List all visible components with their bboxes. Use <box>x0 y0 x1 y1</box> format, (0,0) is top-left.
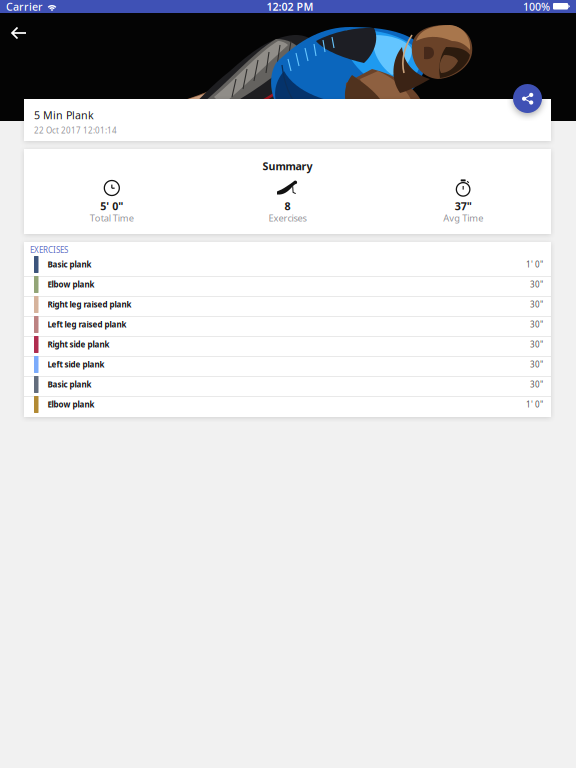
staticText: Elbow plank <box>47 279 94 290</box>
staticText: 30" <box>530 299 543 310</box>
button[interactable]: Back <box>2 17 38 49</box>
staticText: Basic plank <box>47 259 91 270</box>
button[interactable]: Right leg raised plank <box>24 297 551 317</box>
staticText: 5 Min Plank <box>34 108 94 122</box>
staticText: 30" <box>530 339 543 350</box>
staticText: Avg Time <box>443 212 483 224</box>
staticText: Elbow plank <box>47 399 94 410</box>
button[interactable]: Basic plank <box>24 377 551 397</box>
staticText: 30" <box>530 379 543 390</box>
staticText: Right leg raised plank <box>47 299 131 310</box>
staticText: 30" <box>530 279 543 290</box>
button[interactable]: Elbow plank <box>24 397 551 417</box>
staticText: 37" <box>455 199 472 213</box>
staticText: EXERCISES <box>30 245 68 255</box>
button[interactable]: Left leg raised plank <box>24 317 551 337</box>
staticText: Left leg raised plank <box>47 319 126 330</box>
staticText: Summary <box>262 159 312 173</box>
staticText: 5' 0" <box>100 199 123 213</box>
button[interactable]: Left side plank <box>24 357 551 377</box>
button[interactable]: Elbow plank <box>24 277 551 297</box>
staticText: Exercises <box>268 212 306 224</box>
staticText: 8 <box>284 199 290 213</box>
staticText: Left side plank <box>47 359 104 370</box>
button[interactable]: Share <box>513 84 542 113</box>
staticText: 1' 0" <box>526 399 543 410</box>
button[interactable]: Right side plank <box>24 337 551 357</box>
staticText: 30" <box>530 359 543 370</box>
staticText: 30" <box>530 319 543 330</box>
staticText: Right side plank <box>47 339 109 350</box>
staticText: 100% <box>523 0 550 14</box>
button[interactable]: Basic plank <box>24 257 551 277</box>
staticText: Carrier <box>6 0 43 14</box>
staticText: 1' 0" <box>526 259 543 270</box>
staticText: 22 Oct 2017 12:01:14 <box>34 125 117 136</box>
staticText: Basic plank <box>47 379 91 390</box>
staticText: 12:02 PM <box>266 0 313 14</box>
staticText: Total Time <box>90 212 134 224</box>
